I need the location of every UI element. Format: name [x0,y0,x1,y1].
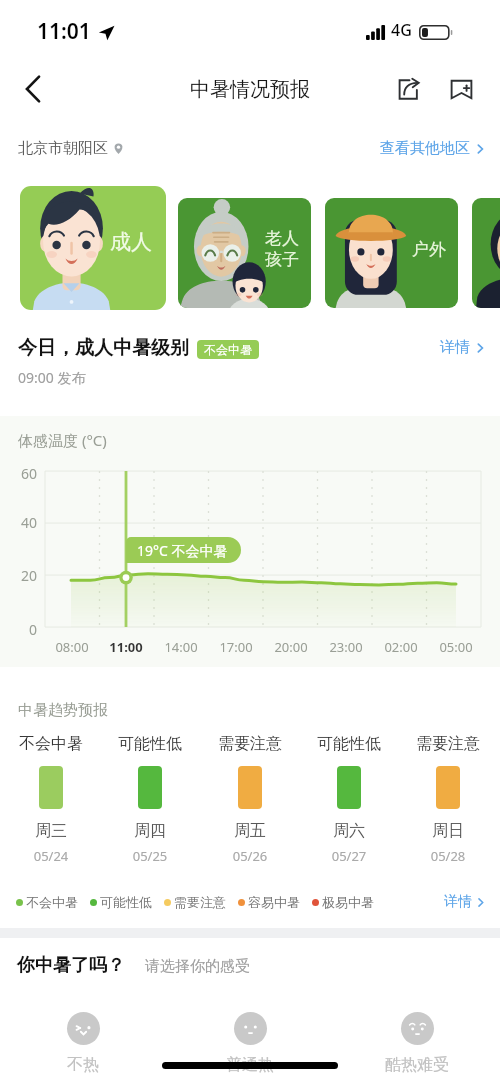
staticText: 你中暑了吗？ [17,954,125,977]
button[interactable]: 普通热 [195,1012,305,1075]
button[interactable]: 不会中暑 [16,894,78,910]
staticText: 19°C 不会中暑 [137,541,228,560]
staticText: 4G [391,19,412,41]
staticText: 普通热 [195,1055,305,1075]
button[interactable]: 详情 [440,338,486,357]
button[interactable]: 不热 [28,1012,138,1075]
staticText: 老人 [265,228,299,249]
staticText: 05/25 [100,847,200,865]
button[interactable]: 户外 [325,198,458,308]
staticText: 17:00 [206,638,266,656]
staticText: 不会中暑 [26,894,78,910]
button[interactable]: 极易中暑 [312,894,374,910]
staticText: 20:00 [261,638,321,656]
staticText: 容易中暑 [248,894,300,910]
button[interactable]: 北京市朝阳区 [18,139,124,158]
staticText: 酷热难受 [362,1055,472,1075]
staticText: 不会中暑 [204,342,252,357]
button[interactable]: 详情 [444,893,486,911]
staticText: 需要注意 [200,734,300,754]
button[interactable]: 可能性低 [299,734,399,865]
staticText: 05/24 [1,847,101,865]
button[interactable]: Share [389,69,429,109]
button[interactable] [472,198,500,308]
staticText: 孩子 [265,249,299,270]
button[interactable]: Add bookmark [441,69,481,109]
staticText: 周四 [100,821,200,841]
staticText: 中暑情况预报 [190,77,310,102]
button[interactable]: 需要注意 [164,894,226,910]
staticText: 60 [10,464,37,483]
button[interactable]: 可能性低 [100,734,200,865]
button[interactable]: 容易中暑 [238,894,300,910]
staticText: 23:00 [316,638,376,656]
staticText: 11:01 [37,17,91,46]
staticText: 北京市朝阳区 [18,139,108,158]
button[interactable]: 需要注意 [200,734,300,865]
staticText: 11:00 [96,638,156,656]
staticText: 0 [10,620,37,639]
staticText: 40 [10,513,37,532]
staticText: 中暑趋势预报 [18,701,108,720]
staticText: 周日 [398,821,498,841]
staticText: 详情 [440,338,470,357]
staticText: 20 [10,566,37,585]
staticText: 可能性低 [100,894,152,910]
staticText: 08:00 [42,638,102,656]
staticText: 查看其他地区 [380,139,470,158]
staticText: 05/26 [200,847,300,865]
staticText: 周三 [1,821,101,841]
staticText: 需要注意 [174,894,226,910]
button[interactable]: 查看其他地区 [380,139,486,158]
staticText: 不热 [28,1055,138,1075]
button[interactable]: 老人 [178,198,311,308]
button[interactable]: 可能性低 [90,894,152,910]
button[interactable]: 酷热难受 [362,1012,472,1075]
button[interactable]: 成人 [20,186,166,310]
staticText: 成人 [110,229,152,255]
staticText: 05/27 [299,847,399,865]
staticText: 周六 [299,821,399,841]
staticText: 今日，成人中暑级别 [18,336,189,360]
staticText: 02:00 [371,638,431,656]
button[interactable]: 不会中暑 [1,734,101,865]
staticText: 周五 [200,821,300,841]
staticText: 05:00 [426,638,486,656]
staticText: 14:00 [151,638,211,656]
staticText: 请选择你的感受 [145,957,250,976]
staticText: 详情 [444,893,472,911]
button[interactable]: Back [11,67,55,111]
staticText: 09:00 发布 [18,368,86,387]
staticText: 可能性低 [299,734,399,754]
staticText: 体感温度 (°C) [18,430,107,450]
staticText: 可能性低 [100,734,200,754]
staticText: 05/28 [398,847,498,865]
staticText: 户外 [412,239,446,260]
staticText: 需要注意 [398,734,498,754]
staticText: 极易中暑 [322,894,374,910]
button[interactable]: 需要注意 [398,734,498,865]
staticText: 不会中暑 [1,734,101,754]
